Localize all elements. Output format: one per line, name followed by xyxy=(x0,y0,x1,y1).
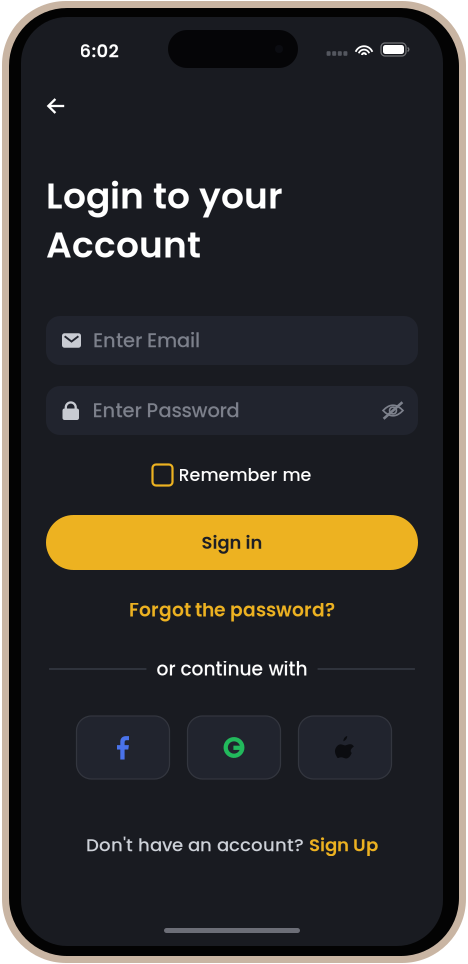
staticText: 6:02 xyxy=(79,38,118,64)
staticText: or continue with xyxy=(156,656,307,682)
staticText: Sign in xyxy=(201,530,262,555)
staticText: Sign Up xyxy=(309,832,378,858)
staticText: Enter Password xyxy=(92,397,239,424)
staticText: Login to your xyxy=(46,171,283,221)
staticText: Account xyxy=(46,220,201,270)
staticText: Enter Email xyxy=(93,327,200,354)
button[interactable]: Continue with Facebook xyxy=(76,716,169,779)
button[interactable]: Remember me xyxy=(21,459,443,491)
button[interactable]: Forgot the password? xyxy=(21,595,443,625)
button[interactable]: Continue with Google xyxy=(187,716,280,779)
staticText: Forgot the password? xyxy=(129,597,335,623)
staticText: Don't have an account? xyxy=(86,832,309,858)
button[interactable]: Sign Up xyxy=(309,832,378,858)
button[interactable]: Sign in xyxy=(46,515,418,570)
button[interactable]: Continue with Apple xyxy=(298,716,391,779)
button[interactable]: Back xyxy=(34,84,78,128)
staticText: Remember me xyxy=(178,463,311,487)
button[interactable]: Show password xyxy=(382,399,404,421)
